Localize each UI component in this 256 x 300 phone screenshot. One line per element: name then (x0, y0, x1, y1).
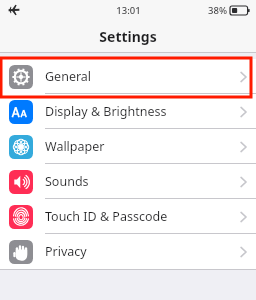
staticText: Touch ID & Passcode (45, 208, 240, 225)
button[interactable]: General (0, 59, 256, 94)
button[interactable]: Sounds (0, 164, 256, 199)
button[interactable]: Touch ID & Passcode (0, 199, 256, 234)
staticText: Privacy (45, 243, 240, 260)
staticText: Settings (99, 27, 157, 46)
staticText: Display & Brightness (45, 103, 240, 120)
button[interactable]: Privacy (0, 234, 256, 269)
staticText: Wallpaper (45, 138, 240, 155)
button[interactable]: Wallpaper (0, 129, 256, 164)
staticText: General (45, 68, 240, 85)
staticText: Sounds (45, 173, 240, 190)
button[interactable]: Display & Brightness (0, 94, 256, 129)
staticText: 38% (208, 4, 227, 17)
staticText: 13:01 (116, 4, 141, 17)
